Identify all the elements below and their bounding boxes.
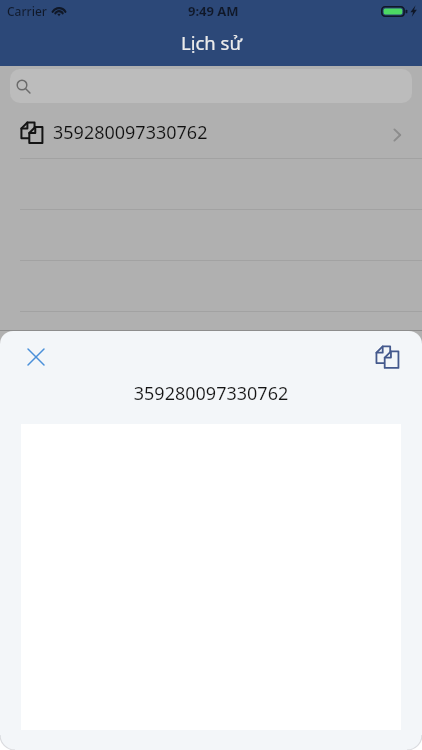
staticText: Carrier [7,3,47,19]
other: Open [387,125,407,145]
staticText: Lịch sử [181,30,242,55]
button[interactable]: Search [10,69,412,103]
staticText: 359280097330762 [53,120,208,145]
button[interactable]: 359280097330762 [0,106,422,158]
staticText: 359280097330762 [0,381,422,406]
staticText: 9:49 AM [188,2,239,20]
button[interactable]: Close [16,335,56,375]
button[interactable]: Copy [367,335,407,375]
